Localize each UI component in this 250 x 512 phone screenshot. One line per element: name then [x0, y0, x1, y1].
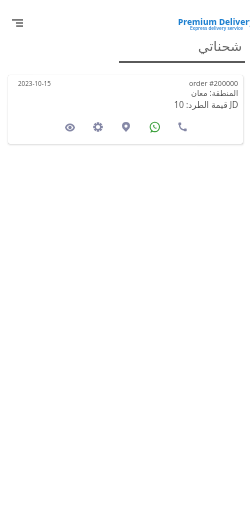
- staticText: 2023-10-15: [18, 79, 51, 88]
- button[interactable]: Settings: [84, 120, 112, 134]
- button[interactable]: Menu: [6, 12, 28, 34]
- button[interactable]: View shipment: [56, 120, 84, 134]
- staticText: قيمة الطرد: 10 JD: [174, 99, 239, 111]
- button[interactable]: Call: [168, 120, 196, 134]
- staticText: Express delivery service: [190, 25, 244, 31]
- staticText: Premium Delivery: [178, 16, 250, 27]
- button[interactable]: Location: [112, 120, 140, 134]
- staticText: order #200000: [189, 78, 239, 88]
- staticText: شحناتي: [198, 38, 243, 54]
- button[interactable]: WhatsApp: [140, 120, 168, 134]
- staticText: المنطقة: معان: [191, 87, 239, 98]
- button[interactable]: 2023-10-15: [8, 75, 243, 144]
